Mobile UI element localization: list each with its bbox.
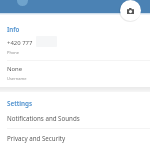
staticText: Username [7,76,27,81]
button[interactable]: Change profile photo [120,0,141,21]
button[interactable] [0,60,150,86]
button[interactable] [0,128,150,148]
staticText: Settings [7,99,33,108]
staticText: +420 777 [7,39,33,47]
staticText: Privacy and Security [7,134,66,142]
button[interactable] [0,108,150,128]
staticText: Notifications and Sounds [7,114,80,122]
staticText: Phone [7,50,20,55]
staticText: Info [7,25,20,33]
staticText: None [7,65,23,73]
button[interactable] [0,34,150,57]
